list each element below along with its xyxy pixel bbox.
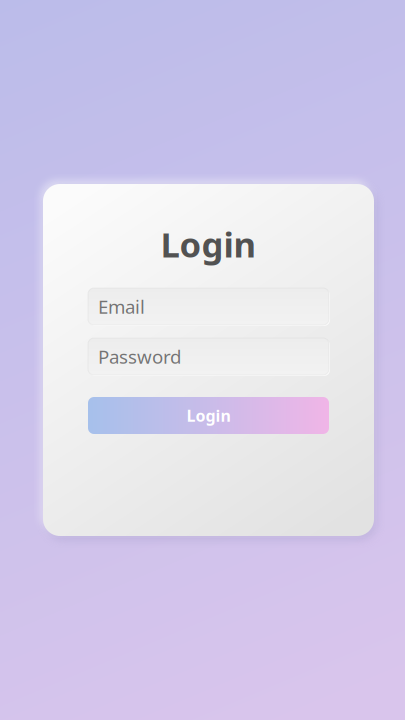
button[interactable]: Email <box>88 288 329 325</box>
button[interactable]: Login <box>88 397 329 434</box>
staticText: Password <box>98 344 181 369</box>
staticText: Login <box>186 405 230 426</box>
button[interactable]: Password <box>88 338 329 375</box>
staticText: Email <box>98 294 145 319</box>
staticText: Login <box>160 221 256 267</box>
